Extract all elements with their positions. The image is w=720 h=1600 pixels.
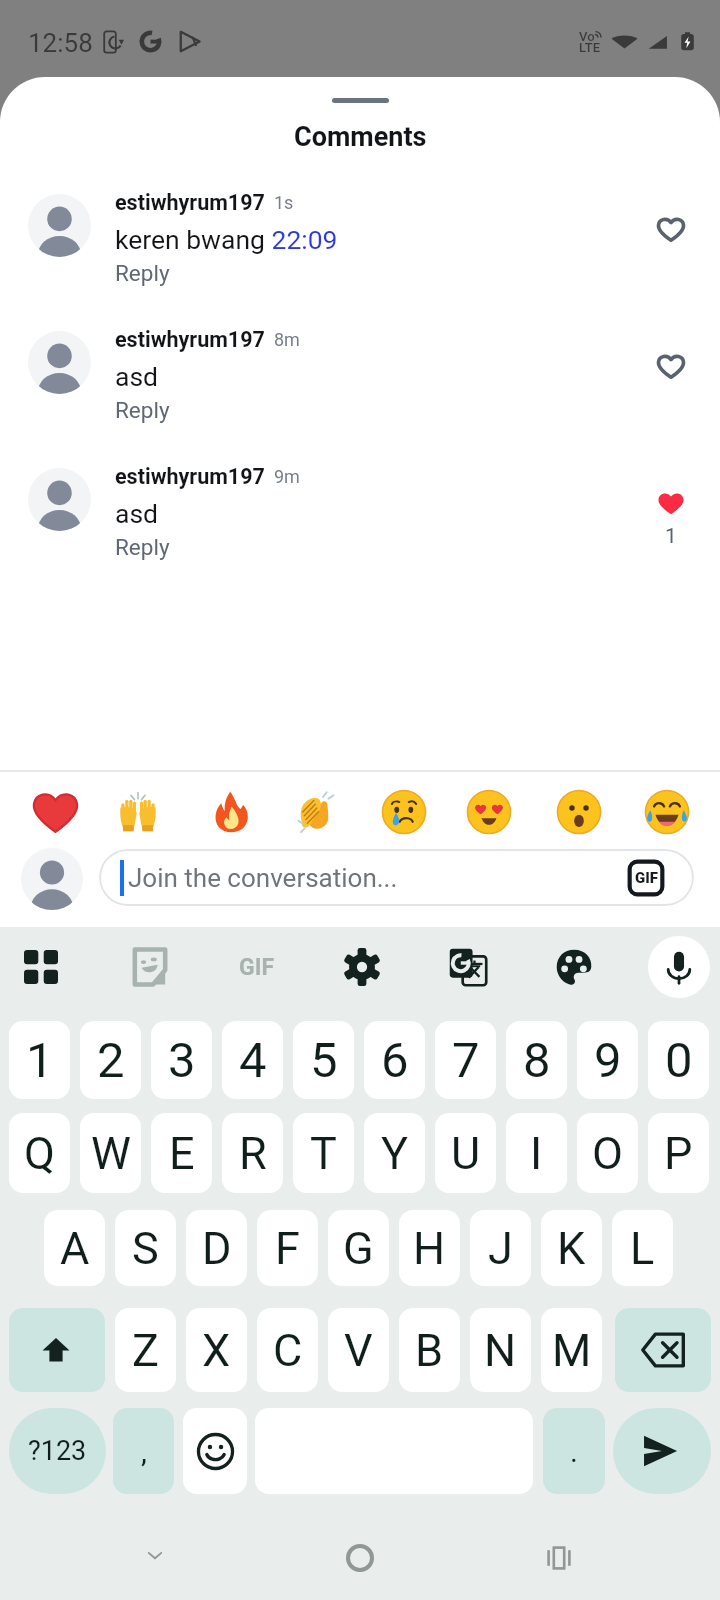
button[interactable]: Reply bbox=[115, 260, 170, 286]
button[interactable]: V bbox=[328, 1308, 389, 1392]
button[interactable]: 9 bbox=[577, 1021, 638, 1099]
staticText: F bbox=[275, 1222, 300, 1275]
staticText: N bbox=[484, 1324, 517, 1377]
button[interactable]: Emoji bbox=[183, 1408, 247, 1494]
staticText: LTE bbox=[579, 40, 600, 55]
button[interactable]: I bbox=[506, 1113, 567, 1193]
button[interactable]: Theme bbox=[544, 937, 604, 997]
button[interactable]: L bbox=[612, 1210, 673, 1286]
staticText: keren bwang 22:09 bbox=[115, 224, 338, 255]
button[interactable]: React bbox=[106, 780, 170, 844]
staticText: R bbox=[239, 1127, 267, 1180]
button[interactable]: 6 bbox=[364, 1021, 425, 1099]
staticText: 2 bbox=[97, 1032, 125, 1089]
button[interactable]: Z bbox=[115, 1308, 176, 1392]
button[interactable]: Back bbox=[129, 1525, 189, 1585]
button[interactable]: Like bbox=[645, 492, 697, 549]
button[interactable]: C bbox=[257, 1308, 318, 1392]
button[interactable]: estiwhyrum197 bbox=[0, 186, 720, 323]
button[interactable]: Stickers bbox=[120, 937, 180, 997]
button[interactable]: Reply bbox=[115, 534, 170, 560]
button[interactable]: N bbox=[470, 1308, 531, 1392]
staticText: estiwhyrum197 bbox=[115, 190, 265, 215]
button[interactable]: GIF keyboard bbox=[226, 945, 286, 989]
staticText: K bbox=[557, 1222, 586, 1275]
button[interactable]: S bbox=[115, 1210, 176, 1286]
staticText: 4 bbox=[239, 1032, 267, 1089]
button[interactable]: Send bbox=[613, 1408, 711, 1494]
button[interactable]: , bbox=[113, 1408, 174, 1494]
button[interactable]: ?123 bbox=[9, 1408, 106, 1494]
button[interactable]: A bbox=[44, 1210, 105, 1286]
staticText: G bbox=[343, 1222, 374, 1275]
button[interactable]: Like bbox=[645, 355, 697, 378]
button[interactable]: 4 bbox=[222, 1021, 283, 1099]
staticText: W bbox=[91, 1127, 131, 1180]
button[interactable]: React bbox=[457, 780, 521, 844]
button[interactable]: 8 bbox=[506, 1021, 567, 1099]
button[interactable]: Apps bbox=[11, 937, 71, 997]
staticText: asd bbox=[115, 498, 159, 529]
button[interactable]: 7 bbox=[435, 1021, 496, 1099]
button[interactable]: Like bbox=[645, 218, 697, 241]
button[interactable]: React bbox=[547, 780, 611, 844]
button[interactable]: Q bbox=[9, 1113, 70, 1193]
button[interactable]: Recents bbox=[531, 1528, 591, 1588]
staticText: Z bbox=[132, 1324, 159, 1377]
button[interactable]: GIF bbox=[627, 859, 665, 897]
staticText: C bbox=[273, 1324, 303, 1377]
staticText: P bbox=[664, 1127, 693, 1180]
staticText: estiwhyrum197 bbox=[115, 327, 265, 352]
button[interactable]: K bbox=[541, 1210, 602, 1286]
button[interactable]: Shift bbox=[9, 1308, 105, 1392]
button[interactable]: X bbox=[186, 1308, 247, 1392]
staticText: 7 bbox=[452, 1032, 480, 1089]
button[interactable]: 5 bbox=[293, 1021, 354, 1099]
staticText: Vo bbox=[579, 29, 595, 44]
button[interactable]: Reply bbox=[115, 397, 170, 423]
button[interactable]: Home bbox=[330, 1528, 390, 1588]
button[interactable]: R bbox=[222, 1113, 283, 1193]
button[interactable]: React bbox=[372, 780, 436, 844]
button[interactable]: . bbox=[543, 1408, 605, 1494]
staticText: J bbox=[488, 1222, 513, 1275]
button[interactable]: O bbox=[577, 1113, 638, 1193]
button[interactable]: H bbox=[399, 1210, 460, 1286]
button[interactable]: Backspace bbox=[615, 1308, 711, 1392]
button[interactable]: Translate bbox=[438, 937, 498, 997]
staticText: 6 bbox=[381, 1032, 409, 1089]
staticText: Y bbox=[381, 1127, 409, 1180]
staticText: 9m bbox=[274, 466, 300, 487]
button[interactable]: W bbox=[80, 1113, 141, 1193]
button[interactable]: U bbox=[435, 1113, 496, 1193]
button[interactable]: Join the conversation... bbox=[99, 849, 694, 906]
staticText: ?123 bbox=[28, 1435, 87, 1467]
button[interactable]: 1 bbox=[9, 1021, 70, 1099]
button[interactable]: 3 bbox=[151, 1021, 212, 1099]
button[interactable]: G bbox=[328, 1210, 389, 1286]
button[interactable]: 2 bbox=[80, 1021, 141, 1099]
staticText: 1 bbox=[665, 524, 677, 549]
button[interactable]: 0 bbox=[648, 1021, 709, 1099]
button[interactable]: F bbox=[257, 1210, 318, 1286]
button[interactable]: E bbox=[151, 1113, 212, 1193]
button[interactable]: Y bbox=[364, 1113, 425, 1193]
button[interactable]: B bbox=[399, 1308, 460, 1392]
button[interactable]: estiwhyrum197 bbox=[0, 460, 720, 597]
staticText: U bbox=[451, 1127, 481, 1180]
button[interactable]: Voice input bbox=[648, 936, 710, 998]
button[interactable]: D bbox=[186, 1210, 247, 1286]
button[interactable]: React bbox=[284, 780, 348, 844]
button[interactable]: M bbox=[541, 1308, 602, 1392]
button[interactable]: React bbox=[23, 780, 87, 844]
staticText: 1 bbox=[26, 1032, 54, 1089]
button[interactable]: React bbox=[199, 780, 263, 844]
button[interactable]: T bbox=[293, 1113, 354, 1193]
button[interactable]: Settings bbox=[332, 937, 392, 997]
button[interactable]: React bbox=[635, 780, 699, 844]
button[interactable]: J bbox=[470, 1210, 531, 1286]
staticText: 0 bbox=[665, 1032, 693, 1089]
button[interactable]: estiwhyrum197 bbox=[0, 323, 720, 460]
button[interactable]: P bbox=[648, 1113, 709, 1193]
